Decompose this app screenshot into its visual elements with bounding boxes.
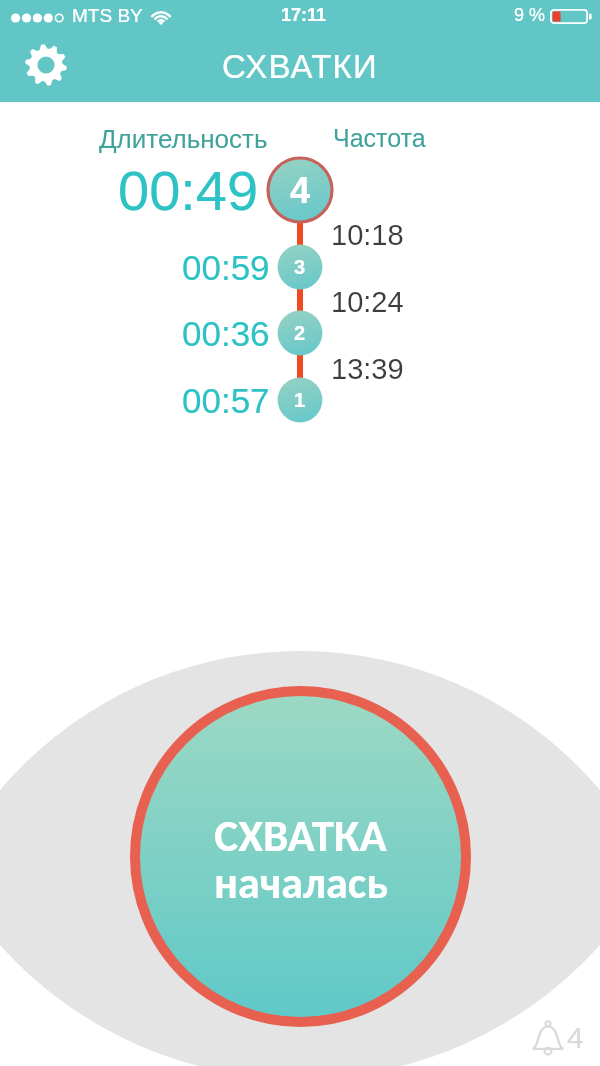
staticText: 00:49 [118, 159, 259, 222]
button[interactable]: 2 [270, 303, 330, 363]
staticText: 2 [294, 322, 306, 344]
staticText: MTS BY [72, 5, 143, 26]
button[interactable]: 1 [270, 370, 330, 430]
staticText: 1 [294, 389, 306, 411]
staticText: Длительность [99, 124, 268, 153]
staticText: 4 [567, 1021, 584, 1055]
staticText: 17:11 [281, 5, 327, 25]
staticText: началась [214, 856, 388, 910]
button[interactable]: СХВАТКА [130, 686, 471, 1027]
button[interactable]: Settings [18, 37, 74, 93]
staticText: 3 [294, 256, 306, 278]
staticText: 00:36 [182, 314, 270, 353]
button[interactable]: 4 [270, 160, 330, 220]
button[interactable]: 3 [270, 237, 330, 297]
staticText: 13:39 [331, 353, 404, 385]
staticText: 10:18 [331, 219, 404, 251]
button[interactable]: Notifications [529, 1020, 584, 1058]
staticText: Частота [333, 124, 426, 152]
staticText: 4 [290, 170, 311, 210]
staticText: 00:57 [182, 381, 270, 420]
staticText: 00:59 [182, 248, 270, 287]
staticText: 10:24 [331, 286, 404, 318]
staticText: СХВАТКА [214, 808, 387, 863]
staticText: СХВАТКИ [222, 48, 378, 85]
staticText: 9 % [514, 5, 546, 25]
